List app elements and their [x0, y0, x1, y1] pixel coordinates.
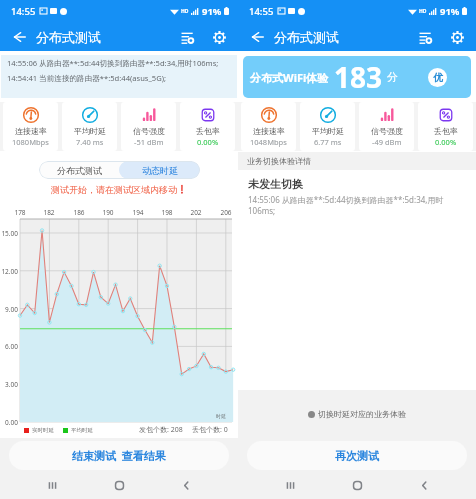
staticText: 分布式测试 — [274, 29, 339, 45]
button[interactable]: 丢包率 — [180, 102, 235, 151]
button[interactable]: 连接速率 — [3, 102, 58, 151]
staticText: 6.77 ms — [314, 137, 342, 147]
staticText: 14:55 — [11, 5, 36, 18]
button[interactable]: 连接速率 — [241, 102, 296, 151]
staticText: 平均时延 — [71, 427, 93, 434]
staticText: 连接速率 — [15, 126, 47, 136]
button[interactable]: Home — [324, 471, 391, 499]
staticText: 14:54:41 当前连接的路由器**:5d:44(asus_5G); — [7, 73, 167, 83]
staticText: 分布式测试 — [36, 29, 101, 45]
staticText: 14:55:06 从路由器**:5d:44切换到路由器**:5d:34,用时10… — [248, 194, 466, 216]
staticText: 3.00 — [0, 380, 18, 389]
button[interactable]: Back — [153, 471, 220, 499]
button[interactable]: Settings — [446, 26, 468, 48]
staticText: 91% — [202, 5, 222, 18]
staticText: 结束测试 查看结果 — [72, 448, 166, 463]
button[interactable]: 平均时延 — [62, 102, 117, 151]
staticText: 测试开始，请在测试区域内移动 — [51, 184, 177, 195]
staticText: 9.00 — [0, 305, 18, 314]
staticText: 发包个数: 208 — [139, 425, 183, 435]
staticText: 优 — [433, 71, 443, 84]
staticText: 15.00 — [0, 229, 18, 238]
staticText: 178 — [12, 208, 28, 217]
staticText: 动态时延 — [142, 165, 178, 176]
staticText: 业务切换体验详情 — [247, 156, 311, 166]
staticText: 14:55 — [249, 5, 274, 18]
button[interactable]: 丢包率 — [418, 102, 473, 151]
staticText: 186 — [71, 208, 87, 217]
staticText: 6.00 — [0, 342, 18, 351]
button[interactable]: History — [176, 26, 198, 48]
staticText: 丢包率 — [196, 126, 220, 136]
staticText: 1080Mbps — [12, 137, 49, 147]
staticText: 分布式WiFi体验 — [250, 70, 329, 85]
staticText: 信号强度 — [133, 126, 165, 136]
button[interactable]: Back — [246, 26, 268, 48]
staticText: -51 dBm — [134, 137, 164, 147]
button[interactable]: Home — [86, 471, 153, 499]
staticText: ❗ — [177, 185, 187, 194]
staticText: 182 — [41, 208, 57, 217]
button[interactable]: Recents — [256, 471, 324, 499]
staticText: 198 — [159, 208, 175, 217]
staticText: 丢包率 — [434, 126, 458, 136]
staticText: 12.00 — [0, 267, 18, 276]
button[interactable]: 平均时延 — [300, 102, 355, 151]
button[interactable]: Recents — [18, 471, 86, 499]
button[interactable]: 分布式测试 — [39, 161, 119, 179]
button[interactable]: Back — [8, 26, 30, 48]
staticText: 91% — [440, 5, 460, 18]
button[interactable]: 结束测试 查看结果 — [9, 441, 229, 470]
button[interactable]: 动态时延 — [119, 161, 200, 179]
staticText: 平均时延 — [74, 126, 106, 136]
staticText: 14:55:06 从路由器**:5d:44切换到路由器**:5d:34,用时10… — [7, 58, 219, 68]
staticText: 194 — [130, 208, 146, 217]
staticText: 未发生切换 — [248, 177, 303, 191]
staticText: 206 — [218, 208, 234, 217]
staticText: HD — [419, 8, 427, 15]
staticText: 再次测试 — [335, 449, 379, 463]
staticText: 0.00% — [197, 137, 219, 147]
staticText: 丢包个数: 0 — [192, 425, 228, 435]
staticText: 1048Mbps — [250, 137, 287, 147]
staticText: 信号强度 — [371, 126, 403, 136]
button[interactable]: Back — [391, 471, 458, 499]
staticText: 202 — [188, 208, 204, 217]
button[interactable]: Settings — [208, 26, 230, 48]
button[interactable]: 优 — [428, 68, 447, 87]
staticText: 0.00 — [0, 418, 18, 427]
staticText: 连接速率 — [253, 126, 285, 136]
staticText: 分 — [387, 70, 398, 84]
button[interactable]: 再次测试 — [247, 441, 467, 470]
staticText: 切换时延对应的业务体验 — [318, 409, 406, 419]
staticText: 实时时延 — [32, 427, 54, 434]
staticText: 分布式测试 — [57, 165, 102, 176]
staticText: HD — [181, 8, 189, 15]
staticText: 183 — [334, 58, 383, 96]
staticText: 7.40 ms — [76, 137, 104, 147]
button[interactable]: 信号强度 — [121, 102, 176, 151]
button[interactable]: 信号强度 — [359, 102, 414, 151]
staticText: 时延 — [216, 413, 226, 419]
staticText: 平均时延 — [312, 126, 344, 136]
button[interactable]: History — [414, 26, 436, 48]
staticText: -49 dBm — [372, 137, 402, 147]
staticText: 0.00% — [435, 137, 457, 147]
staticText: 190 — [100, 208, 116, 217]
